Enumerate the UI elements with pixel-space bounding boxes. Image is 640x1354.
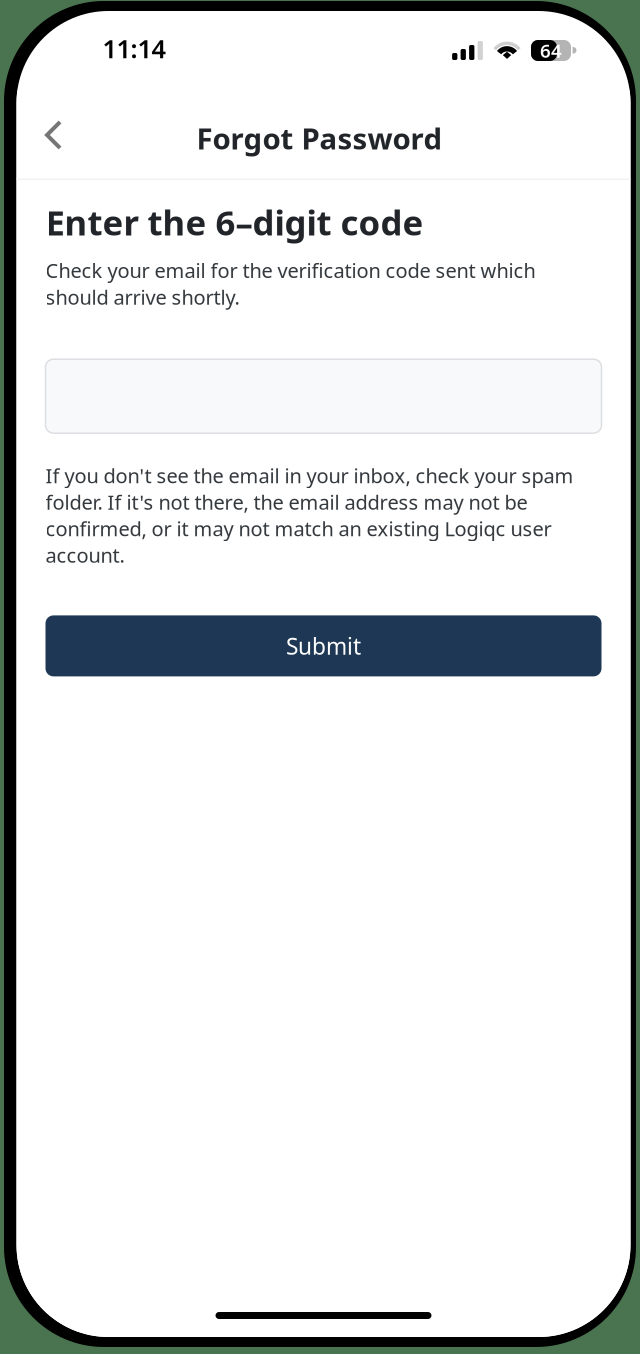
staticText: Enter the 6–digit code	[45, 199, 423, 245]
button[interactable]: Submit	[45, 615, 601, 676]
staticText: Check your email for the verification co…	[45, 257, 535, 310]
staticText: 64	[540, 38, 562, 63]
staticText: If you don't see the email in your inbox…	[45, 462, 573, 568]
staticText: Forgot Password	[196, 118, 442, 157]
button[interactable]: Back	[25, 105, 81, 165]
staticText: Submit	[286, 631, 361, 661]
button[interactable]: 6-digit code	[45, 359, 601, 433]
staticText: 11:14	[102, 32, 165, 65]
